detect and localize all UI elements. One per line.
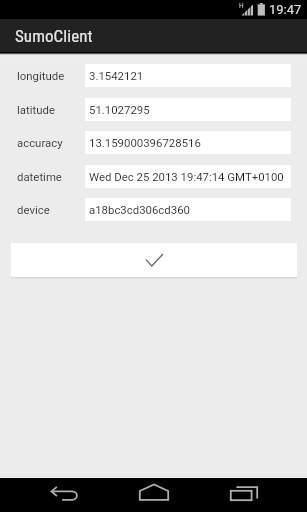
button[interactable]: 13.159000396728516 <box>85 131 291 154</box>
button[interactable]: 3.1542121 <box>85 64 291 87</box>
button[interactable]: Wed Dec 25 2013 19:47:14 GMT+0100 <box>85 165 291 188</box>
button[interactable]: Recent apps <box>222 478 266 512</box>
button[interactable]: Home <box>132 478 176 512</box>
staticText: 51.1027295 <box>89 103 150 116</box>
staticText: 13.159000396728516 <box>89 136 201 149</box>
button[interactable]: 51.1027295 <box>85 98 291 121</box>
staticText: 19:47 <box>269 2 302 17</box>
button[interactable]: Submit <box>11 243 297 277</box>
staticText: SumoClient <box>15 26 93 46</box>
button[interactable]: SumoClient <box>0 19 307 52</box>
staticText: longitude <box>17 69 65 82</box>
button[interactable]: a18bc3cd306cd360 <box>85 198 291 221</box>
staticText: H <box>239 2 244 10</box>
staticText: datetime <box>17 170 62 183</box>
staticText: 3.1542121 <box>89 69 144 82</box>
staticText: device <box>17 203 50 216</box>
staticText: Wed Dec 25 2013 19:47:14 GMT+0100 <box>89 170 284 183</box>
staticText: a18bc3cd306cd360 <box>89 203 190 216</box>
staticText: latitude <box>17 103 55 116</box>
staticText: accuracy <box>17 136 63 149</box>
button[interactable]: Back <box>42 478 86 512</box>
